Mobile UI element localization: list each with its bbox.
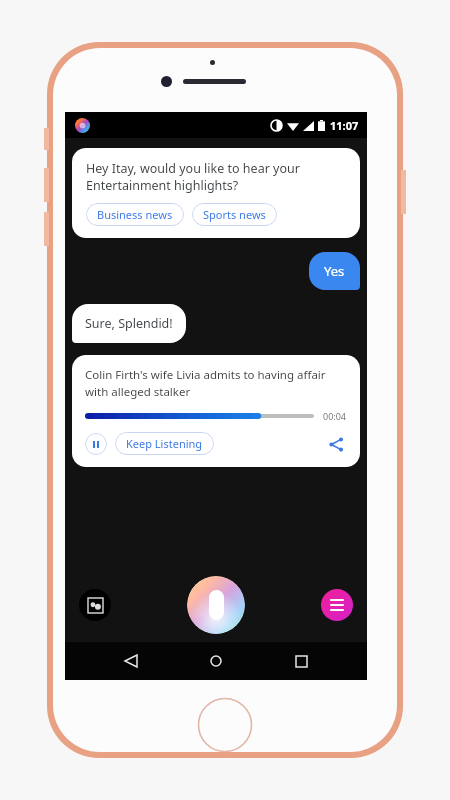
staticText: Sports news	[203, 207, 266, 222]
staticText: 11:07	[330, 118, 359, 133]
staticText: Hey Itay, would you like to hear your En…	[86, 160, 300, 194]
button[interactable]: Sports news	[192, 203, 277, 226]
staticText: Business news	[97, 207, 173, 222]
button[interactable]: Colin Firth's wife Livia admits to havin…	[72, 355, 360, 467]
button[interactable]: Yes	[309, 252, 360, 290]
button[interactable]: Menu	[321, 589, 353, 621]
button[interactable]: Keep Listening	[115, 432, 214, 455]
button[interactable]: Hey Itay, would you like to hear your En…	[72, 148, 360, 238]
button[interactable]: Pause	[85, 433, 107, 455]
button[interactable]: Business news	[86, 203, 184, 226]
button[interactable]: Image search	[79, 589, 111, 621]
staticText: Colin Firth's wife Livia admits to havin…	[85, 367, 326, 399]
button[interactable]: Share	[325, 433, 347, 455]
button[interactable]: Recents	[282, 642, 320, 680]
button[interactable]: Sure, Splendid!	[72, 304, 186, 343]
button[interactable]: Voice input	[187, 576, 245, 634]
button[interactable]: Back	[112, 642, 150, 680]
staticText: 00:04	[323, 410, 347, 422]
staticText: Yes	[324, 262, 345, 280]
staticText: Keep Listening	[126, 436, 203, 451]
button[interactable]: Home	[197, 642, 235, 680]
staticText: Sure, Splendid!	[85, 315, 173, 332]
